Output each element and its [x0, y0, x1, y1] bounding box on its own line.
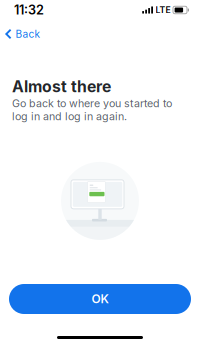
staticText: LTE — [155, 5, 170, 15]
staticText: Back — [15, 28, 40, 40]
staticText: Almost there — [12, 77, 111, 96]
staticText: 11:32 — [14, 2, 44, 18]
button[interactable]: OK — [9, 284, 191, 314]
staticText: OK — [91, 292, 108, 306]
button[interactable]: Back — [0, 21, 48, 44]
staticText: Go back to where you started to log in a… — [12, 97, 172, 123]
